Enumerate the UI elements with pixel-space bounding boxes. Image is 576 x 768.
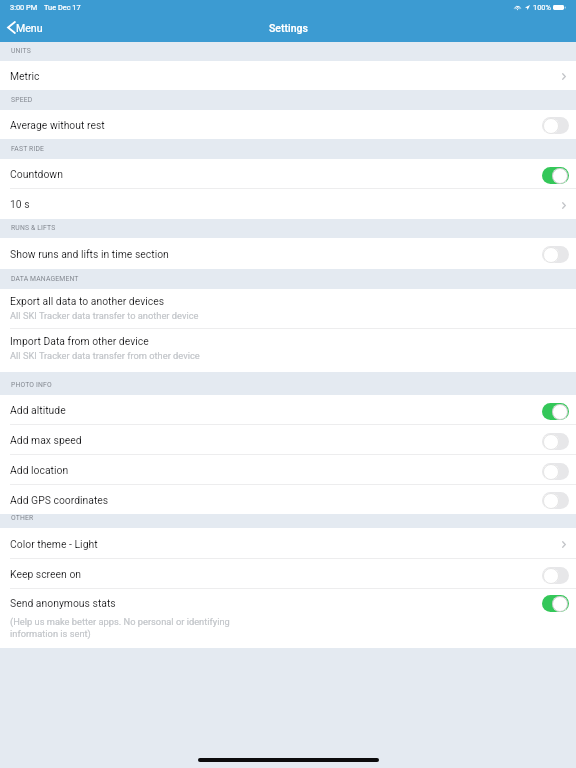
staticText: Export all data to another devices — [10, 295, 165, 307]
button[interactable]: Off — [542, 246, 569, 263]
button[interactable]: Average without rest — [0, 110, 576, 139]
staticText: Countdown — [10, 168, 63, 180]
button[interactable]: Off — [542, 492, 569, 509]
staticText: Import Data from other device — [10, 335, 149, 347]
staticText: Add altitude — [10, 404, 66, 416]
staticText: Add max speed — [10, 434, 82, 446]
button[interactable]: Back to Menu — [0, 18, 51, 37]
button[interactable]: Off — [542, 463, 569, 480]
staticText: FAST RIDE — [11, 145, 45, 153]
staticText: OTHER — [11, 514, 34, 522]
staticText: Tue Dec 17 — [44, 3, 81, 12]
button[interactable]: Off — [542, 433, 569, 450]
button[interactable]: Add location — [0, 455, 576, 485]
button[interactable]: Countdown — [0, 159, 576, 189]
staticText: Settings — [269, 22, 308, 34]
staticText: (Help us make better apps. No personal o… — [10, 616, 230, 639]
staticText: Add GPS coordinates — [10, 494, 109, 506]
staticText: 3:00 PM — [10, 3, 38, 12]
staticText: Average without rest — [10, 119, 105, 131]
button[interactable]: On — [542, 595, 569, 612]
staticText: All SKI Tracker data transfer from other… — [10, 350, 200, 361]
button[interactable]: Keep screen on — [0, 559, 576, 589]
button[interactable]: Off — [542, 117, 569, 134]
staticText: Add location — [10, 464, 69, 476]
staticText: 100% — [533, 3, 551, 12]
staticText: Menu — [16, 22, 43, 34]
staticText: 10 s — [10, 198, 30, 210]
button[interactable]: Show runs and lifts in time section — [0, 238, 576, 269]
button[interactable]: Import Data from other device — [0, 329, 576, 372]
staticText: Metric — [10, 70, 40, 82]
staticText: Send anonymous stats — [10, 597, 116, 609]
button[interactable]: Add altitude — [0, 395, 576, 425]
button[interactable]: 10 s — [0, 189, 576, 219]
button[interactable]: On — [542, 167, 569, 184]
button[interactable]: Metric — [0, 61, 576, 90]
staticText: SPEED — [11, 96, 33, 104]
button[interactable]: Off — [542, 567, 569, 584]
staticText: Color theme - Light — [10, 538, 98, 550]
button[interactable]: Export all data to another devices — [0, 289, 576, 329]
button[interactable]: On — [542, 403, 569, 420]
button[interactable]: Color theme - Light — [0, 528, 576, 559]
button[interactable]: Add max speed — [0, 425, 576, 455]
staticText: RUNS & LIFTS — [11, 224, 56, 232]
staticText: Show runs and lifts in time section — [10, 248, 169, 260]
button[interactable]: Add GPS coordinates — [0, 485, 576, 514]
staticText: DATA MANAGEMENT — [11, 275, 79, 283]
staticText: PHOTO INFO — [11, 381, 52, 389]
staticText: UNITS — [11, 47, 31, 55]
staticText: All SKI Tracker data transfer to another… — [10, 310, 199, 321]
staticText: Keep screen on — [10, 568, 82, 580]
button[interactable]: Send anonymous stats — [0, 589, 576, 648]
